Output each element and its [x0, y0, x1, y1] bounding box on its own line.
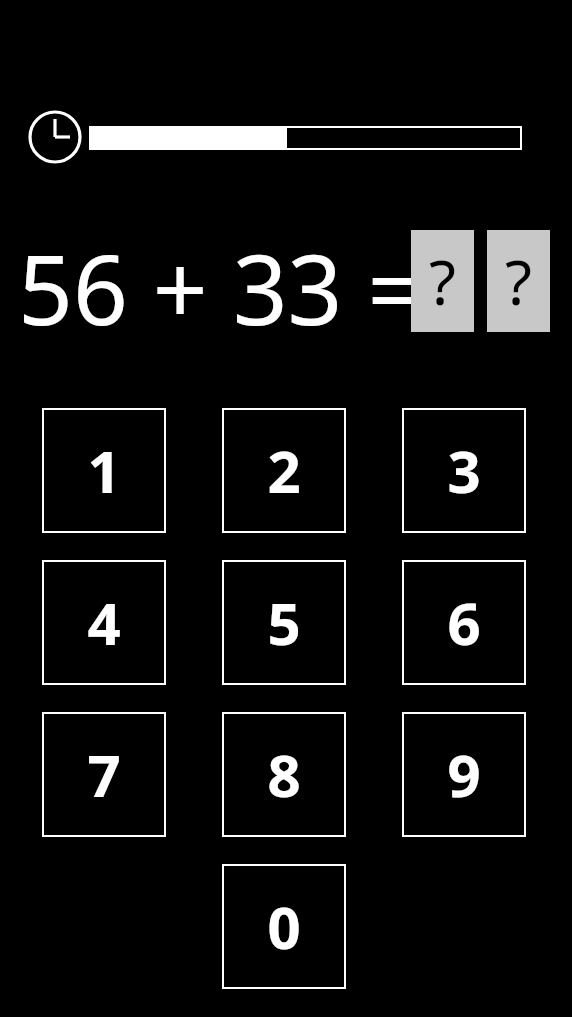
button[interactable]: 2	[222, 408, 346, 533]
button[interactable]: 6	[402, 560, 526, 685]
button[interactable]: 0	[222, 864, 346, 989]
button[interactable]: 9	[402, 712, 526, 837]
staticText: ?	[429, 239, 456, 323]
staticText: 3	[447, 431, 481, 510]
button[interactable]: 1	[42, 408, 166, 533]
button[interactable]: 8	[222, 712, 346, 837]
staticText: 7	[87, 735, 121, 814]
staticText: 9	[447, 735, 481, 814]
staticText: 4	[87, 583, 121, 662]
button[interactable]: 3	[402, 408, 526, 533]
button[interactable]: 5	[222, 560, 346, 685]
staticText: 2	[267, 431, 301, 510]
staticText: ?	[505, 239, 532, 323]
staticText: 8	[267, 735, 301, 814]
button[interactable]: 4	[42, 560, 166, 685]
staticText: 56 + 33 =	[18, 222, 423, 340]
button[interactable]: 7	[42, 712, 166, 837]
staticText: 6	[447, 583, 481, 662]
staticText: 1	[87, 431, 121, 510]
other: Timer	[28, 110, 82, 164]
staticText: 0	[267, 887, 301, 966]
staticText: 5	[267, 583, 301, 662]
